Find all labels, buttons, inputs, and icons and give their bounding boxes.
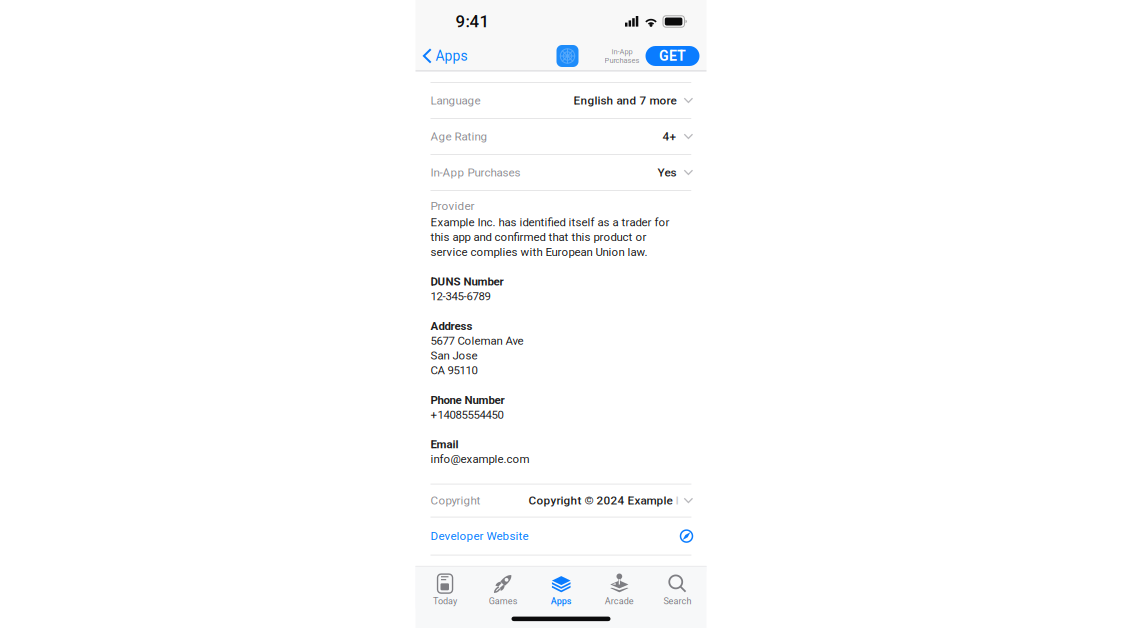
staticText: Search — [663, 596, 691, 606]
staticText: Provider — [430, 199, 474, 213]
button[interactable]: App icon — [556, 45, 604, 67]
staticText: San Jose — [430, 349, 477, 362]
staticText: In-App — [611, 47, 632, 56]
staticText: CA 95110 — [430, 364, 477, 377]
button[interactable]: In-App Purchases — [415, 155, 706, 190]
staticText: service complies with European Union law… — [430, 245, 647, 259]
staticText: Email — [430, 438, 458, 451]
button[interactable]: Copyright — [415, 485, 706, 517]
staticText: I — [672, 494, 678, 507]
button[interactable]: Apps — [532, 572, 590, 609]
staticText: Apps — [551, 596, 572, 606]
staticText: Address — [430, 319, 472, 333]
staticText: English and 7 more — [573, 94, 676, 107]
staticText: 9:41 — [455, 12, 489, 31]
button[interactable]: Games — [474, 572, 532, 609]
staticText: Arcade — [605, 596, 634, 606]
staticText: 5677 Coleman Ave — [430, 334, 523, 347]
staticText: Games — [489, 596, 518, 606]
staticText: GET — [659, 48, 686, 64]
staticText: Copyright — [430, 494, 480, 507]
staticText: Language — [430, 94, 480, 107]
staticText: Yes — [657, 166, 676, 179]
staticText: 12-345-6789 — [430, 290, 490, 303]
button[interactable]: GET — [639, 46, 699, 66]
staticText: 4+ — [662, 130, 676, 143]
staticText: +14085554450 — [430, 408, 503, 421]
staticText: Developer Website — [430, 529, 528, 543]
staticText: Copyright © 2024 Example — [528, 494, 672, 507]
button[interactable]: Arcade — [590, 572, 648, 609]
staticText: Today — [433, 596, 457, 606]
staticText: In-App Purchases — [430, 166, 520, 179]
staticText: DUNS Number — [430, 275, 503, 288]
staticText: Purchases — [604, 56, 639, 65]
staticText: Age Rating — [430, 130, 487, 143]
button[interactable]: Search — [648, 572, 706, 609]
staticText: info@example.com — [430, 452, 529, 466]
staticText: Apps — [435, 48, 467, 64]
button[interactable]: Age Rating — [415, 119, 706, 154]
staticText: Phone Number — [430, 393, 504, 407]
button[interactable]: Today — [416, 572, 474, 609]
button[interactable]: Developer Website — [415, 518, 706, 555]
staticText: Example Inc. has identified itself as a … — [430, 216, 669, 229]
staticText: this app and confirmed that this product… — [430, 230, 646, 244]
button[interactable]: Language — [415, 83, 706, 118]
button[interactable]: Apps — [415, 40, 473, 72]
